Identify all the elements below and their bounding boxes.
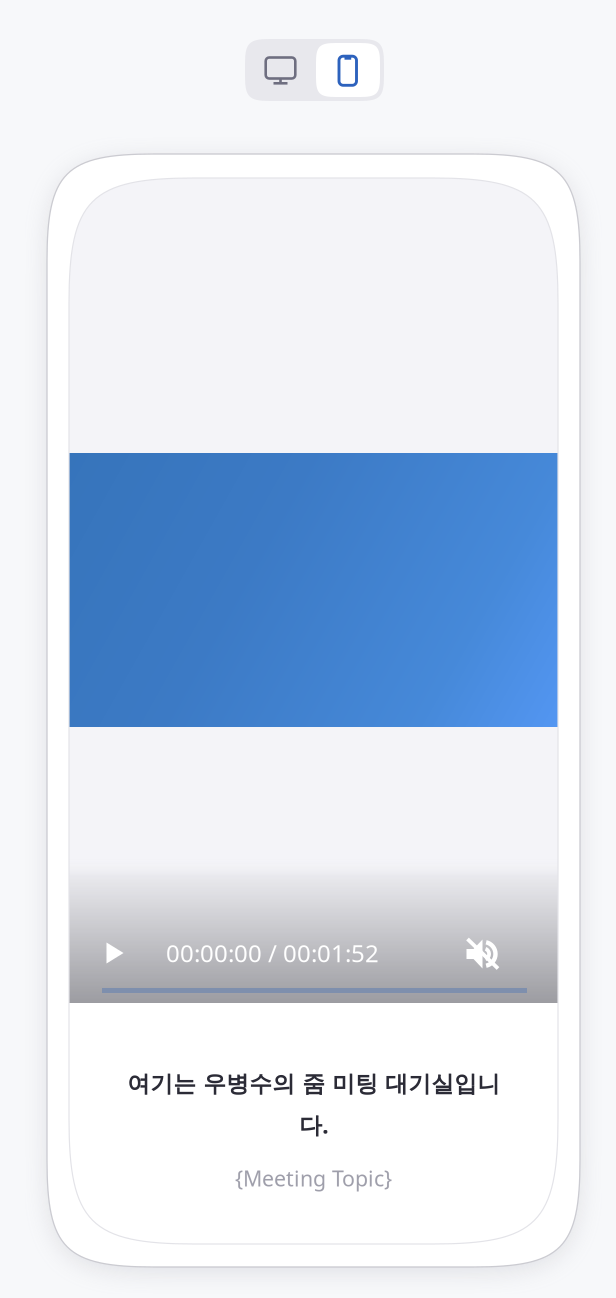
button[interactable]: Unmute xyxy=(462,933,504,975)
staticText: {Meeting Topic} xyxy=(235,1164,392,1192)
button[interactable]: Play xyxy=(95,932,135,974)
button[interactable]: Phone preview xyxy=(316,43,380,97)
staticText: 00:00:00 / 00:01:52 xyxy=(166,937,379,969)
button[interactable]: Desktop preview xyxy=(249,43,312,97)
staticText: 여기는 우병수의 줌 미팅 대기실입니다. xyxy=(127,1070,500,1140)
